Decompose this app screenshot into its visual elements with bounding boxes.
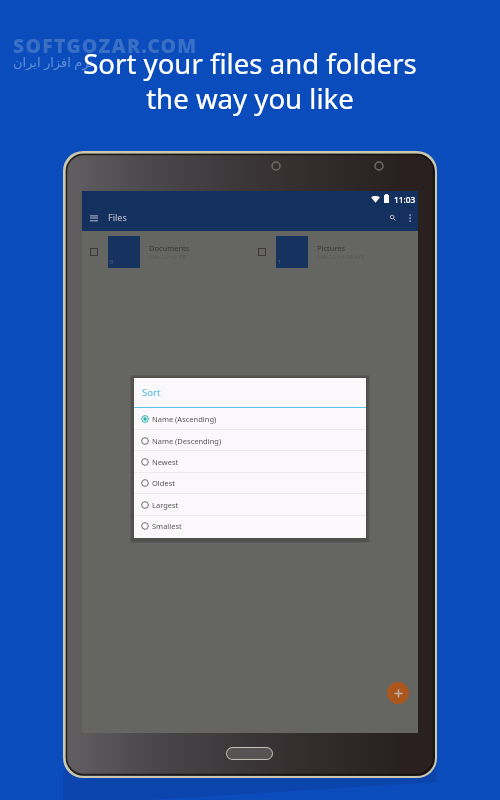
button[interactable]: 1 [250, 233, 418, 271]
staticText: Largest [152, 500, 179, 510]
button[interactable]: Name (Ascending) [134, 408, 366, 429]
staticText: Oldest [152, 478, 175, 488]
button[interactable]: Newest [134, 451, 366, 472]
button[interactable]: Name (Descending) [134, 430, 366, 451]
staticText: Newest [152, 457, 179, 467]
button[interactable]: Smallest [134, 515, 366, 536]
button[interactable]: Largest [134, 494, 366, 515]
staticText: Pictures [317, 243, 346, 253]
button[interactable]: Oldest [134, 472, 366, 493]
button[interactable]: 0 [82, 233, 250, 271]
staticText: Name (Ascending) [152, 414, 217, 424]
button[interactable]: Add [387, 682, 409, 704]
button[interactable]: Search [385, 210, 401, 226]
staticText: Documents [149, 243, 190, 253]
staticText: 11:03 [394, 194, 416, 205]
button[interactable]: Files [108, 211, 127, 223]
button[interactable]: Open navigation drawer [86, 209, 102, 225]
staticText: Name (Descending) [152, 436, 222, 446]
staticText: Smallest [152, 521, 182, 531]
staticText: نرم افزار ایران [13, 53, 94, 71]
button[interactable]: More options [402, 210, 418, 226]
staticText: 0 [110, 258, 114, 266]
staticText: Sort [142, 386, 161, 399]
staticText: SOFTGOZAR.COM [13, 32, 198, 59]
staticText: 1 [278, 258, 282, 266]
staticText: Sort your files and folders the way you … [83, 44, 417, 117]
